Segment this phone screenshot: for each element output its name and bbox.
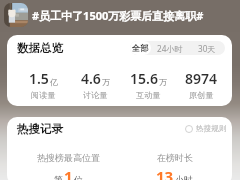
staticText: 1 [64,166,73,180]
staticText: 热搜榜最高位置 [37,152,100,163]
staticText: 1.5 [29,69,49,88]
staticText: 15.6 [130,69,158,88]
staticText: 小时 [175,174,193,180]
staticText: #员工中了1500万彩票后直接离职# [32,8,204,23]
staticText: 30天 [198,43,216,54]
staticText: 13 [156,166,174,180]
button[interactable]: 4.6 [69,69,122,100]
staticText: 热搜规则 [196,124,227,134]
staticText: 全部 [132,43,149,53]
staticText: 24小时 [157,43,183,54]
staticText: 亿 [50,77,58,87]
button[interactable]: 15.6 [122,69,175,100]
button[interactable]: Hot search rules [185,124,227,134]
button[interactable]: 24小时 [151,41,188,55]
staticText: 互动量 [136,90,161,100]
button[interactable]: Topic image [4,3,28,27]
staticText: 万 [102,77,110,87]
staticText: 热搜记录 [17,122,63,136]
staticText: 万 [159,77,167,87]
staticText: 4.6 [81,69,101,88]
staticText: 阅读量 [31,90,56,100]
other: Hot search rules [185,125,193,133]
button[interactable]: 8974 [175,69,228,100]
button[interactable]: 在榜时长 [121,152,227,180]
staticText: 原创量 [189,90,214,100]
staticText: 在榜时长 [157,152,193,163]
button[interactable]: 全部 [130,41,151,55]
button[interactable]: 1.5 [17,69,69,100]
staticText: 8974 [185,69,218,88]
staticText: 讨论量 [83,90,108,100]
button[interactable]: 30天 [188,41,225,55]
staticText: 位 [74,174,83,180]
button[interactable]: 热搜榜最高位置 [16,152,121,180]
staticText: 第 [54,174,63,180]
staticText: 数据总览 [17,41,63,55]
